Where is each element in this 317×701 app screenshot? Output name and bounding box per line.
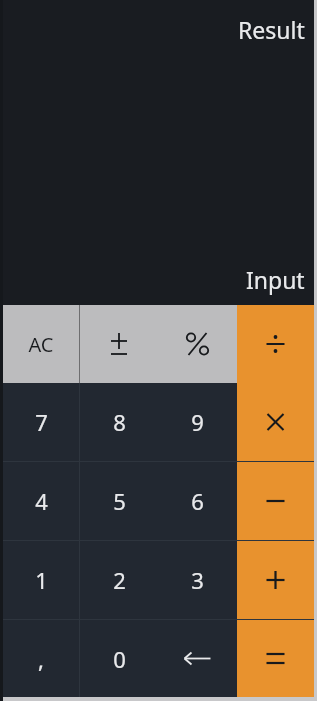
button[interactable]: 9 xyxy=(158,383,237,461)
staticText: 6 xyxy=(191,486,204,516)
button[interactable]: 6 xyxy=(158,462,237,540)
button[interactable]: 8 xyxy=(80,383,158,461)
button[interactable]: 4 xyxy=(3,462,79,540)
button[interactable]: , xyxy=(3,620,79,697)
button[interactable]: 1 xyxy=(3,541,79,619)
staticText: 2 xyxy=(113,565,126,595)
staticText: 7 xyxy=(35,407,48,437)
staticText: AC xyxy=(28,331,54,358)
staticText: Result xyxy=(238,14,305,45)
staticText: 9 xyxy=(191,407,204,437)
staticText: 8 xyxy=(113,407,126,437)
staticText: , xyxy=(38,644,44,674)
button[interactable]: Backspace xyxy=(158,620,237,697)
staticText: 3 xyxy=(191,565,204,595)
button[interactable]: Add xyxy=(237,541,314,619)
button[interactable]: Subtract xyxy=(237,462,314,540)
staticText: 1 xyxy=(35,565,48,595)
staticText: Input xyxy=(246,264,305,295)
button[interactable]: Toggle sign xyxy=(80,305,158,383)
button[interactable]: AC xyxy=(3,305,79,383)
button[interactable]: Percent xyxy=(158,305,237,383)
button[interactable]: Multiply xyxy=(237,383,314,461)
button[interactable]: 2 xyxy=(80,541,158,619)
button[interactable]: Divide xyxy=(237,305,314,383)
button[interactable]: 3 xyxy=(158,541,237,619)
button[interactable]: 5 xyxy=(80,462,158,540)
button[interactable]: 0 xyxy=(80,620,158,697)
staticText: 0 xyxy=(113,644,126,674)
button[interactable]: Equals xyxy=(237,620,314,697)
staticText: 5 xyxy=(113,486,126,516)
button[interactable]: 7 xyxy=(3,383,79,461)
staticText: 4 xyxy=(35,486,48,516)
